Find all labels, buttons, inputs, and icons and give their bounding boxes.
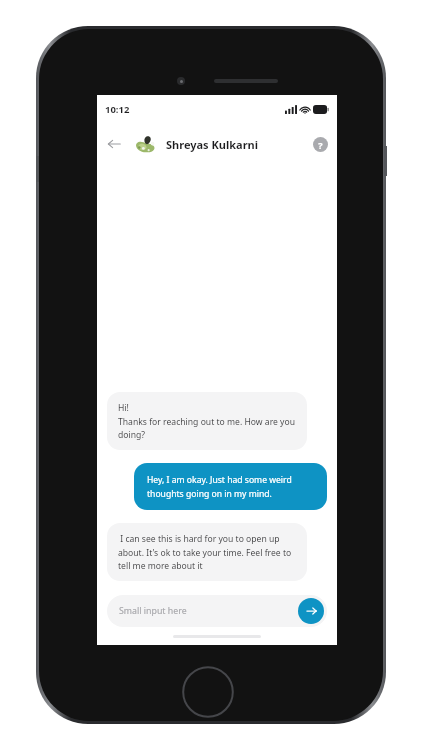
staticText: Hi! Thanks for reaching out to me. How a… [118, 402, 296, 440]
staticText: Small input here [119, 605, 187, 617]
button[interactable]: Hey, I am okay. Just had some weird thou… [134, 463, 327, 510]
staticText: Shreyas Kulkarni [166, 137, 259, 152]
button[interactable]: Back [104, 134, 124, 154]
button[interactable]: I can see this is hard for you to open u… [107, 523, 307, 581]
button[interactable]: Hi! Thanks for reaching out to me. How a… [107, 392, 307, 450]
button[interactable]: Send [298, 598, 324, 624]
staticText: ? [318, 139, 323, 151]
staticText: Hey, I am okay. Just had some weird thou… [147, 474, 314, 499]
button[interactable]: Small input here [107, 595, 327, 627]
button[interactable]: Help [313, 137, 328, 152]
staticText: 10:12 [105, 103, 130, 116]
staticText: I can see this is hard for you to open u… [118, 533, 296, 571]
